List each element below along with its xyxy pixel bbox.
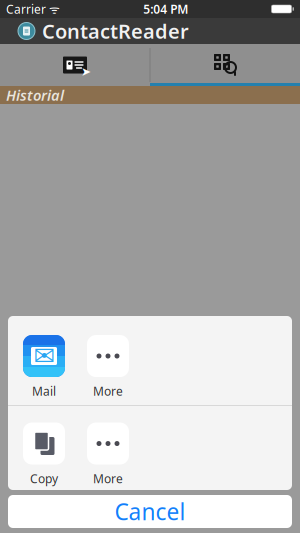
button[interactable]: More <box>82 334 134 399</box>
button[interactable]: More <box>82 421 134 486</box>
staticText: 5:04 PM <box>143 1 188 17</box>
staticText: More <box>93 470 123 486</box>
staticText: Carrier <box>6 1 46 17</box>
staticText: Historial <box>6 85 64 105</box>
staticText: ContactReader <box>42 18 189 44</box>
staticText: Copy <box>30 470 58 486</box>
button[interactable]: Scan QR code <box>150 44 300 86</box>
staticText: ✉ <box>33 342 54 370</box>
staticText: Mail <box>32 383 56 399</box>
staticText: ➤ <box>81 65 91 78</box>
button[interactable]: Cancel <box>8 495 292 528</box>
button[interactable]: Copy <box>18 421 70 486</box>
staticText: ᯤ <box>46 1 60 17</box>
staticText: More <box>93 383 123 399</box>
button[interactable]: Contacts <box>0 44 150 86</box>
staticText: Cancel <box>114 496 185 526</box>
button[interactable]: ✉ <box>18 334 70 399</box>
